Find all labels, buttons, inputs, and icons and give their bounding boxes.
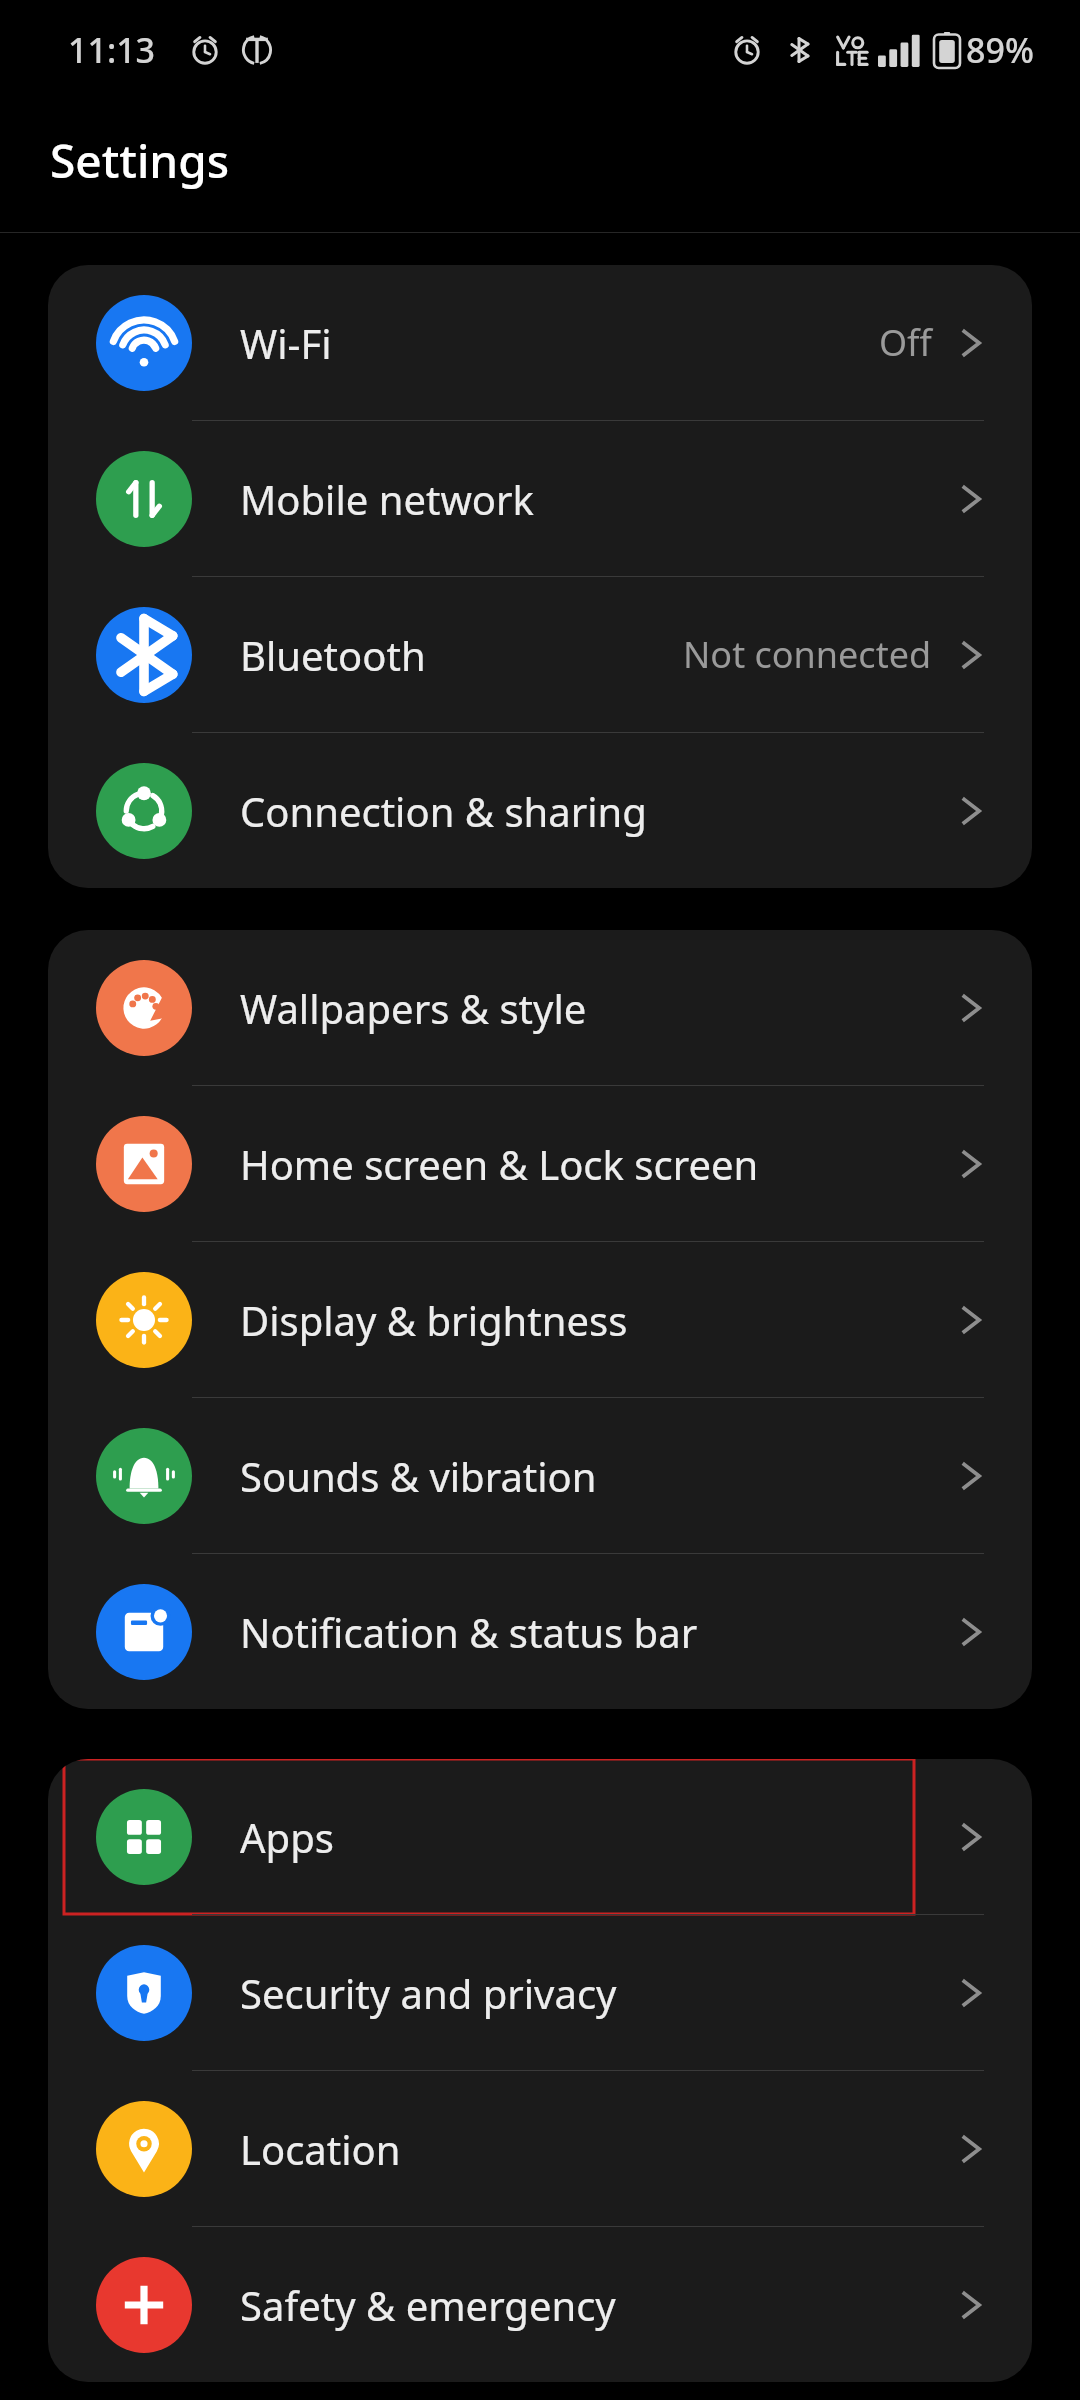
button[interactable]: Mobile network — [48, 421, 1032, 576]
staticText: Location — [240, 2122, 401, 2176]
button[interactable]: Home screen & Lock screen — [48, 1086, 1032, 1241]
button[interactable]: Wi-Fi — [48, 265, 1032, 420]
button[interactable]: Bluetooth — [48, 577, 1032, 732]
button[interactable]: Display & brightness — [48, 1242, 1032, 1397]
button[interactable]: Wallpapers & style — [48, 930, 1032, 1085]
button[interactable]: Connection & sharing — [48, 733, 1032, 888]
staticText: Mobile network — [240, 472, 534, 526]
staticText: Safety & emergency — [240, 2278, 616, 2332]
staticText: Sounds & vibration — [240, 1449, 597, 1503]
staticText: Wi-Fi — [240, 316, 332, 370]
staticText: Bluetooth — [240, 628, 426, 682]
staticText: Security and privacy — [240, 1966, 617, 2020]
staticText: 11:13 — [68, 27, 156, 73]
staticText: Connection & sharing — [240, 784, 647, 838]
staticText: Wallpapers & style — [240, 981, 587, 1035]
button[interactable]: Sounds & vibration — [48, 1398, 1032, 1553]
button[interactable]: Security and privacy — [48, 1915, 1032, 2070]
staticText: Apps — [240, 1810, 334, 1864]
button[interactable]: Location — [48, 2071, 1032, 2226]
staticText: Display & brightness — [240, 1293, 628, 1347]
staticText: Not connected — [683, 630, 932, 679]
staticText: Notification & status bar — [240, 1605, 698, 1659]
button[interactable]: Apps — [48, 1759, 1032, 1914]
staticText: Settings — [50, 129, 230, 192]
button[interactable]: Notification & status bar — [48, 1554, 1032, 1709]
staticText: 89% — [966, 27, 1034, 73]
staticText: Home screen & Lock screen — [240, 1137, 759, 1191]
button[interactable]: Safety & emergency — [48, 2227, 1032, 2382]
staticText: Off — [879, 318, 932, 367]
